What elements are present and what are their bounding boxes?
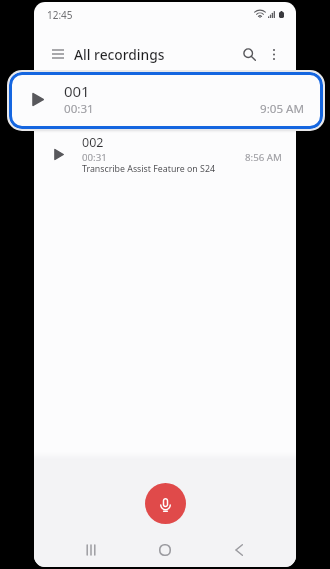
staticText: Transcribe Assist Feature on S24 [82, 163, 215, 175]
button[interactable]: Navigation menu [43, 39, 73, 69]
button[interactable]: Recents [74, 535, 108, 565]
staticText: 002 [82, 134, 104, 151]
staticText: 9:05 AM [245, 100, 282, 113]
staticText: 8:56 AM [245, 151, 282, 164]
button[interactable]: More options [259, 40, 288, 69]
staticText: 9:05 AM [260, 101, 304, 117]
staticText: 00:31 [64, 101, 94, 117]
staticText: 12:45 [47, 8, 73, 22]
button[interactable]: Back [222, 535, 256, 565]
staticText: 001 [64, 81, 90, 101]
button[interactable]: 001 [9, 72, 323, 129]
staticText: 00:31 [82, 100, 107, 113]
staticText: 00:31 [82, 151, 107, 164]
button[interactable]: Record [145, 483, 186, 524]
staticText: 001 [82, 83, 104, 100]
staticText: All recordings [74, 45, 165, 64]
button[interactable]: Home [148, 535, 182, 565]
button[interactable]: Search [235, 40, 264, 69]
